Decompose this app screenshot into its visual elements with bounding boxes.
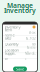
button[interactable]: SKU bbox=[2, 35, 37, 41]
button[interactable]: Item name bbox=[2, 29, 37, 35]
staticText: Save bbox=[16, 66, 24, 72]
staticText: Supplier bbox=[4, 50, 15, 61]
staticText: Quantity bbox=[4, 41, 18, 47]
staticText: Box bbox=[28, 30, 35, 35]
staticText: SKU bbox=[4, 35, 11, 41]
staticText: Location bbox=[4, 47, 18, 53]
staticText: Inventory bbox=[4, 6, 36, 15]
staticText: A-102 bbox=[25, 35, 35, 41]
staticText: Item name bbox=[4, 27, 14, 37]
button[interactable]: Location bbox=[2, 47, 37, 53]
button[interactable]: Save bbox=[13, 66, 27, 71]
button[interactable]: Quantity bbox=[2, 41, 37, 47]
staticText: 48 bbox=[31, 41, 35, 47]
staticText: Inventory bbox=[4, 24, 20, 30]
button[interactable]: Supplier bbox=[2, 53, 37, 59]
staticText: Manage bbox=[7, 1, 33, 10]
staticText: Nordic bbox=[24, 50, 35, 61]
staticText: Aisle 3 bbox=[26, 45, 35, 55]
